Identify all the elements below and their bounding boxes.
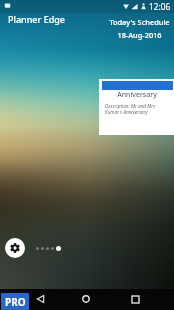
button[interactable]: Settings (5, 238, 25, 258)
staticText: Today's Schedule (109, 17, 170, 27)
button[interactable]: Home (78, 291, 94, 307)
button[interactable]: PRO (1, 293, 29, 310)
staticText: Planner Edge (8, 13, 66, 25)
staticText: Anniversary (99, 89, 174, 99)
staticText: 18-Aug-2016 (117, 30, 162, 40)
staticText: 12:06 (149, 1, 171, 12)
staticText: Description: Mr and Mrs Kumar's Annivers… (105, 103, 156, 115)
button[interactable]: Recents (127, 291, 143, 307)
button[interactable]: Anniversary (99, 79, 174, 135)
staticText: PRO (5, 295, 26, 309)
button[interactable]: Back (32, 291, 48, 307)
